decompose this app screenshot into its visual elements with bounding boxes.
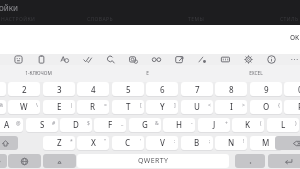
staticText: A (4, 119, 10, 130)
staticText: : (174, 138, 176, 145)
button[interactable]: 1-КЛЮЧОМ (5, 65, 71, 82)
staticText: ] (174, 102, 176, 109)
button[interactable]: H (163, 118, 195, 132)
button[interactable]: Spell check (76, 54, 99, 65)
staticText: X (91, 137, 96, 148)
button[interactable]: D (60, 118, 92, 132)
button[interactable]: E (43, 100, 75, 114)
staticText: 2 (22, 84, 27, 95)
staticText: ТЕМЫ (188, 16, 205, 23)
button[interactable]: Period (235, 154, 265, 168)
button[interactable]: Highlighter (191, 54, 214, 65)
button[interactable]: 7 (181, 82, 213, 96)
button[interactable]: Translate (53, 54, 76, 65)
staticText: 0 (298, 84, 300, 95)
button[interactable]: QWERTY (77, 154, 229, 168)
button[interactable]: Enter (268, 154, 300, 168)
button[interactable]: EXCEL (223, 65, 289, 82)
staticText: F (108, 119, 113, 130)
button[interactable]: СЛОВАРЬ (86, 15, 115, 24)
button[interactable]: ТЕМЫ (187, 15, 206, 24)
button[interactable]: Scan text (122, 54, 145, 65)
button[interactable]: 1 (0, 82, 6, 96)
staticText: H (176, 119, 182, 130)
button[interactable]: K (232, 118, 264, 132)
button[interactable]: Settings (237, 54, 260, 65)
button[interactable]: I (215, 100, 247, 114)
staticText: J (213, 119, 216, 130)
button[interactable]: НАСТРОЙКИ (0, 15, 37, 24)
staticText: 6 (160, 84, 165, 95)
button[interactable]: Change language (8, 154, 41, 168)
staticText: _ (121, 120, 124, 127)
button[interactable]: OK (285, 31, 300, 44)
button[interactable]: Е (114, 65, 180, 82)
staticText: $ (87, 120, 90, 127)
staticText: [ (140, 102, 142, 109)
button[interactable]: 5 (112, 82, 144, 96)
button[interactable]: Z (43, 136, 75, 150)
button[interactable]: O (250, 100, 282, 114)
button[interactable]: P (284, 100, 300, 114)
staticText: НАСТРОЙКИ (1, 16, 36, 23)
button[interactable]: S (26, 118, 58, 132)
button[interactable]: Clipboard (30, 54, 53, 65)
staticText: ойки (0, 2, 18, 13)
button[interactable]: J (198, 118, 230, 132)
staticText: D (73, 119, 79, 130)
staticText: 1-КЛЮЧОМ (25, 70, 52, 77)
button[interactable]: 6 (146, 82, 178, 96)
staticText: < (208, 102, 211, 109)
button[interactable]: СТИЛЬ (279, 15, 300, 24)
staticText: ! (243, 138, 245, 145)
button[interactable]: Q (0, 100, 6, 114)
button[interactable]: A (0, 118, 23, 132)
button[interactable]: 9 (250, 82, 282, 96)
button[interactable]: N (215, 136, 247, 150)
button[interactable]: Handwriting (99, 54, 122, 65)
button[interactable]: 4 (77, 82, 109, 96)
button[interactable]: 3 (43, 82, 75, 96)
button[interactable]: 2 (8, 82, 40, 96)
staticText: 5 (126, 84, 131, 95)
staticText: Y (160, 101, 165, 112)
button[interactable]: V (146, 136, 178, 150)
staticText: * (70, 138, 73, 145)
button[interactable]: Stickers (7, 54, 30, 65)
button[interactable]: W (8, 100, 40, 114)
button[interactable]: R (77, 100, 109, 114)
staticText: E (57, 101, 62, 112)
staticText: OK (290, 33, 300, 42)
button[interactable]: GIF (214, 54, 237, 65)
button[interactable]: C (112, 136, 144, 150)
button[interactable]: 0 (284, 82, 300, 96)
button[interactable]: G (129, 118, 161, 132)
button[interactable]: L (267, 118, 299, 132)
staticText: " (104, 138, 107, 145)
button[interactable]: B (181, 136, 213, 150)
staticText: V (160, 137, 165, 148)
staticText: Z (57, 137, 62, 148)
button[interactable]: 8 (215, 82, 247, 96)
button[interactable]: Emoji (145, 54, 168, 65)
staticText: 3 (57, 84, 62, 95)
button[interactable]: Backspace (275, 136, 300, 150)
button[interactable]: M (250, 136, 282, 150)
button[interactable]: Symbols (0, 154, 7, 168)
button[interactable]: U (181, 100, 213, 114)
staticText: ) (295, 120, 297, 127)
button[interactable]: Share (168, 54, 191, 65)
staticText: QWERTY (138, 156, 169, 166)
button[interactable]: X (77, 136, 109, 150)
staticText: # (52, 120, 56, 127)
button[interactable]: Y (146, 100, 178, 114)
button[interactable]: More options (283, 54, 300, 65)
button[interactable]: F (94, 118, 126, 132)
button[interactable]: Info (260, 54, 283, 65)
staticText: ; (209, 138, 211, 145)
button[interactable]: Comma (43, 154, 76, 168)
button[interactable]: T (112, 100, 144, 114)
button[interactable]: Shift (0, 136, 18, 150)
